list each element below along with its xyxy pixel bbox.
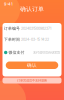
staticText: 2024031500982371 [20, 26, 51, 31]
button[interactable]: 确认 [6, 61, 58, 69]
staticText: 订单编号 [4, 26, 20, 31]
staticText: 支付成功后自动发货 [33, 50, 60, 54]
staticText: 微信支付 [7, 50, 24, 55]
staticText: 下单时间 [4, 37, 20, 42]
staticText: 确认订单 [20, 5, 44, 13]
staticText: 9:41 [4, 1, 13, 6]
staticText: 确认 [27, 62, 37, 68]
staticText: 订单完成后不支持退换 [17, 78, 47, 82]
staticText: 2024-03-15 14:22 [20, 37, 49, 42]
